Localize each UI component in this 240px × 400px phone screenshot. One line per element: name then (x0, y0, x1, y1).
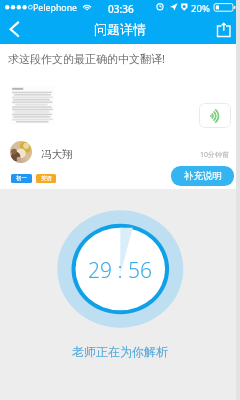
staticText: 冯大翔 (41, 148, 73, 161)
staticText: 英语 (41, 175, 52, 182)
button[interactable]: Question image (11, 86, 54, 124)
staticText: 求这段作文的最正确的中文翻译! (8, 51, 165, 66)
staticText: 20% (191, 2, 210, 15)
staticText: Pelephone (33, 2, 78, 14)
button[interactable]: 补充说明 (171, 166, 234, 186)
staticText: 10分钟前 (200, 150, 230, 160)
staticText: 29 : 56 (88, 256, 153, 285)
staticText: 03:36 (108, 2, 134, 16)
button[interactable]: Share (206, 14, 238, 44)
staticText: 问题详情 (94, 21, 146, 37)
staticText: 初一 (16, 175, 27, 182)
staticText: 补充说明 (184, 170, 222, 182)
button[interactable]: Play audio (199, 103, 231, 128)
staticText: 老师正在为你解析 (72, 344, 168, 359)
button[interactable]: Back (0, 14, 34, 44)
